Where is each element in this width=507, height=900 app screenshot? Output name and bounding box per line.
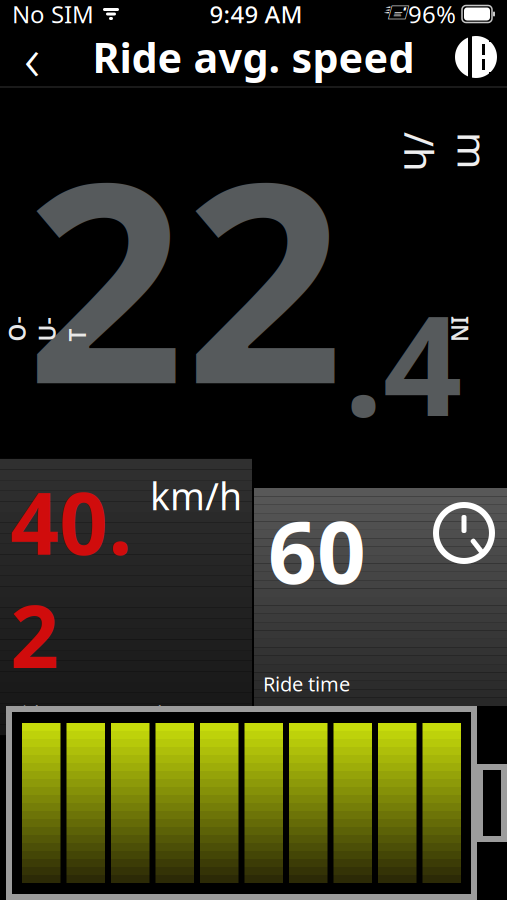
staticText: 🖅 <box>384 0 409 30</box>
staticText: No SIM <box>12 0 94 30</box>
button[interactable]: 40.2 <box>0 459 252 735</box>
staticText: km/h <box>150 471 242 520</box>
staticText: 96% <box>408 0 456 30</box>
button[interactable]: Menu <box>445 28 507 86</box>
staticText: 9:49 AM <box>209 0 302 30</box>
staticText: Ride avg. speed <box>92 30 414 84</box>
button[interactable]: 60 <box>254 488 507 706</box>
button[interactable]: Back <box>0 28 64 86</box>
staticText: 40.2 <box>10 465 132 691</box>
staticText: OUT <box>34 284 59 374</box>
staticText: IN <box>447 314 473 344</box>
staticText: 22 <box>26 92 344 460</box>
staticText: ‹ <box>24 16 40 98</box>
staticText: Ride time <box>263 670 350 697</box>
staticText: 60 <box>268 494 366 607</box>
staticText: .4 <box>344 270 462 454</box>
staticText: km/h <box>453 72 493 232</box>
staticText: Ride max. speed <box>10 699 162 726</box>
